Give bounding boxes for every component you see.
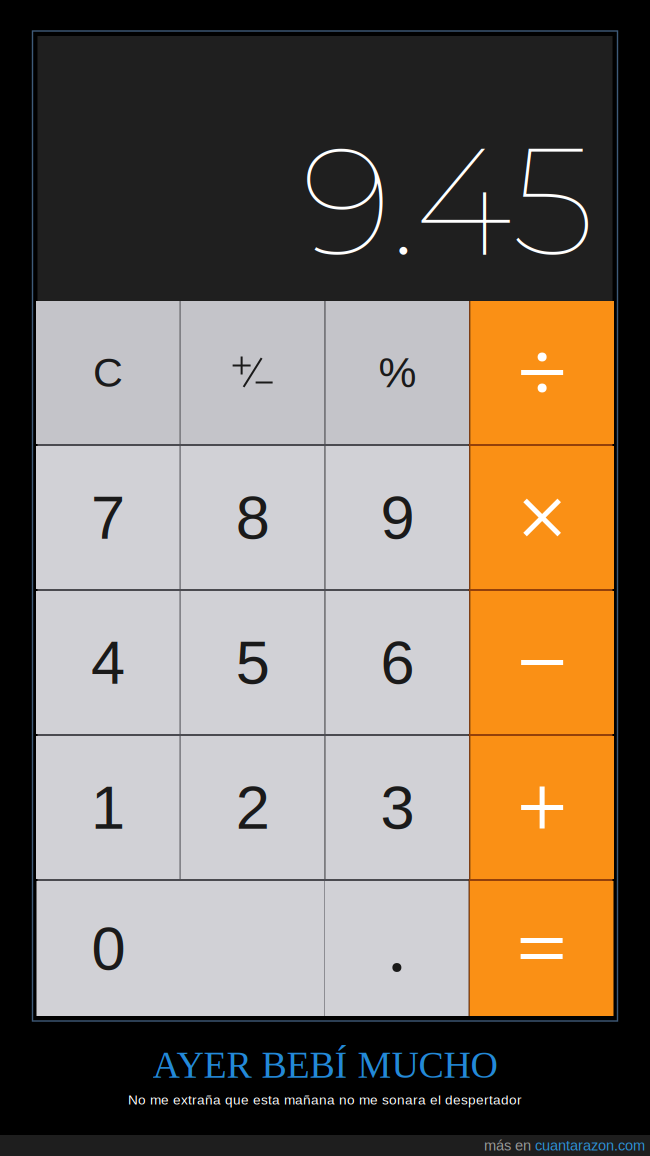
button[interactable]: cuantarazon.com bbox=[535, 1137, 645, 1154]
button[interactable]: 0 bbox=[36, 881, 324, 1016]
button[interactable]: 7 bbox=[36, 446, 180, 589]
staticText: 7 bbox=[91, 483, 125, 552]
button[interactable]: 1 bbox=[36, 736, 180, 879]
button[interactable]: 5 bbox=[181, 591, 325, 734]
button[interactable]: % bbox=[325, 301, 469, 444]
staticText: 4 bbox=[91, 628, 125, 697]
button[interactable]: 6 bbox=[325, 591, 469, 734]
staticText: 3 bbox=[380, 773, 414, 842]
staticText: cuantarazon.com bbox=[535, 1137, 645, 1154]
button[interactable]: 8 bbox=[181, 446, 325, 589]
staticText: más en bbox=[484, 1137, 535, 1154]
button[interactable]: Plus bbox=[470, 736, 614, 879]
staticText: % bbox=[378, 349, 416, 396]
button[interactable]: Divide bbox=[470, 301, 614, 444]
staticText: No me extraña que esta mañana no me sona… bbox=[128, 1092, 522, 1107]
button[interactable]: Decimal point bbox=[325, 881, 469, 1016]
staticText: 5 bbox=[236, 628, 270, 697]
button[interactable]: C bbox=[36, 301, 180, 444]
button[interactable]: Plus minus bbox=[181, 301, 325, 444]
staticText: C bbox=[93, 349, 123, 396]
staticText: 2 bbox=[236, 773, 270, 842]
staticText: 6 bbox=[380, 628, 414, 697]
button[interactable]: 4 bbox=[36, 591, 180, 734]
button[interactable]: Multiply bbox=[470, 446, 614, 589]
button[interactable]: Equals bbox=[470, 881, 614, 1016]
button[interactable]: 9 bbox=[325, 446, 469, 589]
staticText: AYER BEBÍ MUCHO bbox=[152, 1044, 497, 1086]
button[interactable]: Minus bbox=[470, 591, 614, 734]
staticText: 8 bbox=[236, 483, 270, 552]
button[interactable]: 2 bbox=[181, 736, 325, 879]
staticText: 9 bbox=[380, 483, 414, 552]
button[interactable]: 3 bbox=[325, 736, 469, 879]
staticText: 1 bbox=[91, 773, 125, 842]
staticText: 9.45 bbox=[301, 108, 594, 293]
staticText: 0 bbox=[91, 914, 125, 983]
